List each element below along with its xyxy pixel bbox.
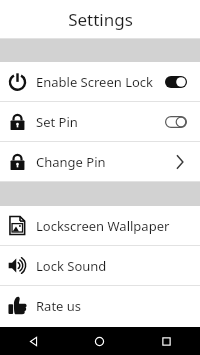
button[interactable]: Change Pin — [0, 142, 200, 181]
staticText: Change Pin — [36, 153, 170, 171]
button[interactable]: Lock Sound — [0, 246, 200, 285]
staticText: Lock Sound — [36, 257, 190, 275]
button[interactable]: Enable Screen Lock — [0, 62, 200, 101]
button[interactable]: Enable Screen Lock toggle, on — [162, 73, 190, 90]
staticText: Enable Screen Lock — [36, 73, 162, 91]
button[interactable]: Recent apps — [133, 327, 200, 355]
button[interactable]: Set Pin toggle, off — [162, 113, 190, 130]
button[interactable]: Set Pin — [0, 102, 200, 141]
button[interactable]: Back — [0, 327, 66, 355]
staticText: Settings — [68, 8, 133, 31]
button[interactable]: Lockscreen Wallpaper — [0, 206, 200, 245]
staticText: Set Pin — [36, 113, 162, 131]
button[interactable]: Home — [66, 327, 133, 355]
button[interactable]: Change Pin — [170, 152, 190, 172]
button[interactable]: Rate us — [0, 286, 200, 325]
staticText: Lockscreen Wallpaper — [36, 217, 190, 235]
staticText: Rate us — [36, 297, 190, 315]
